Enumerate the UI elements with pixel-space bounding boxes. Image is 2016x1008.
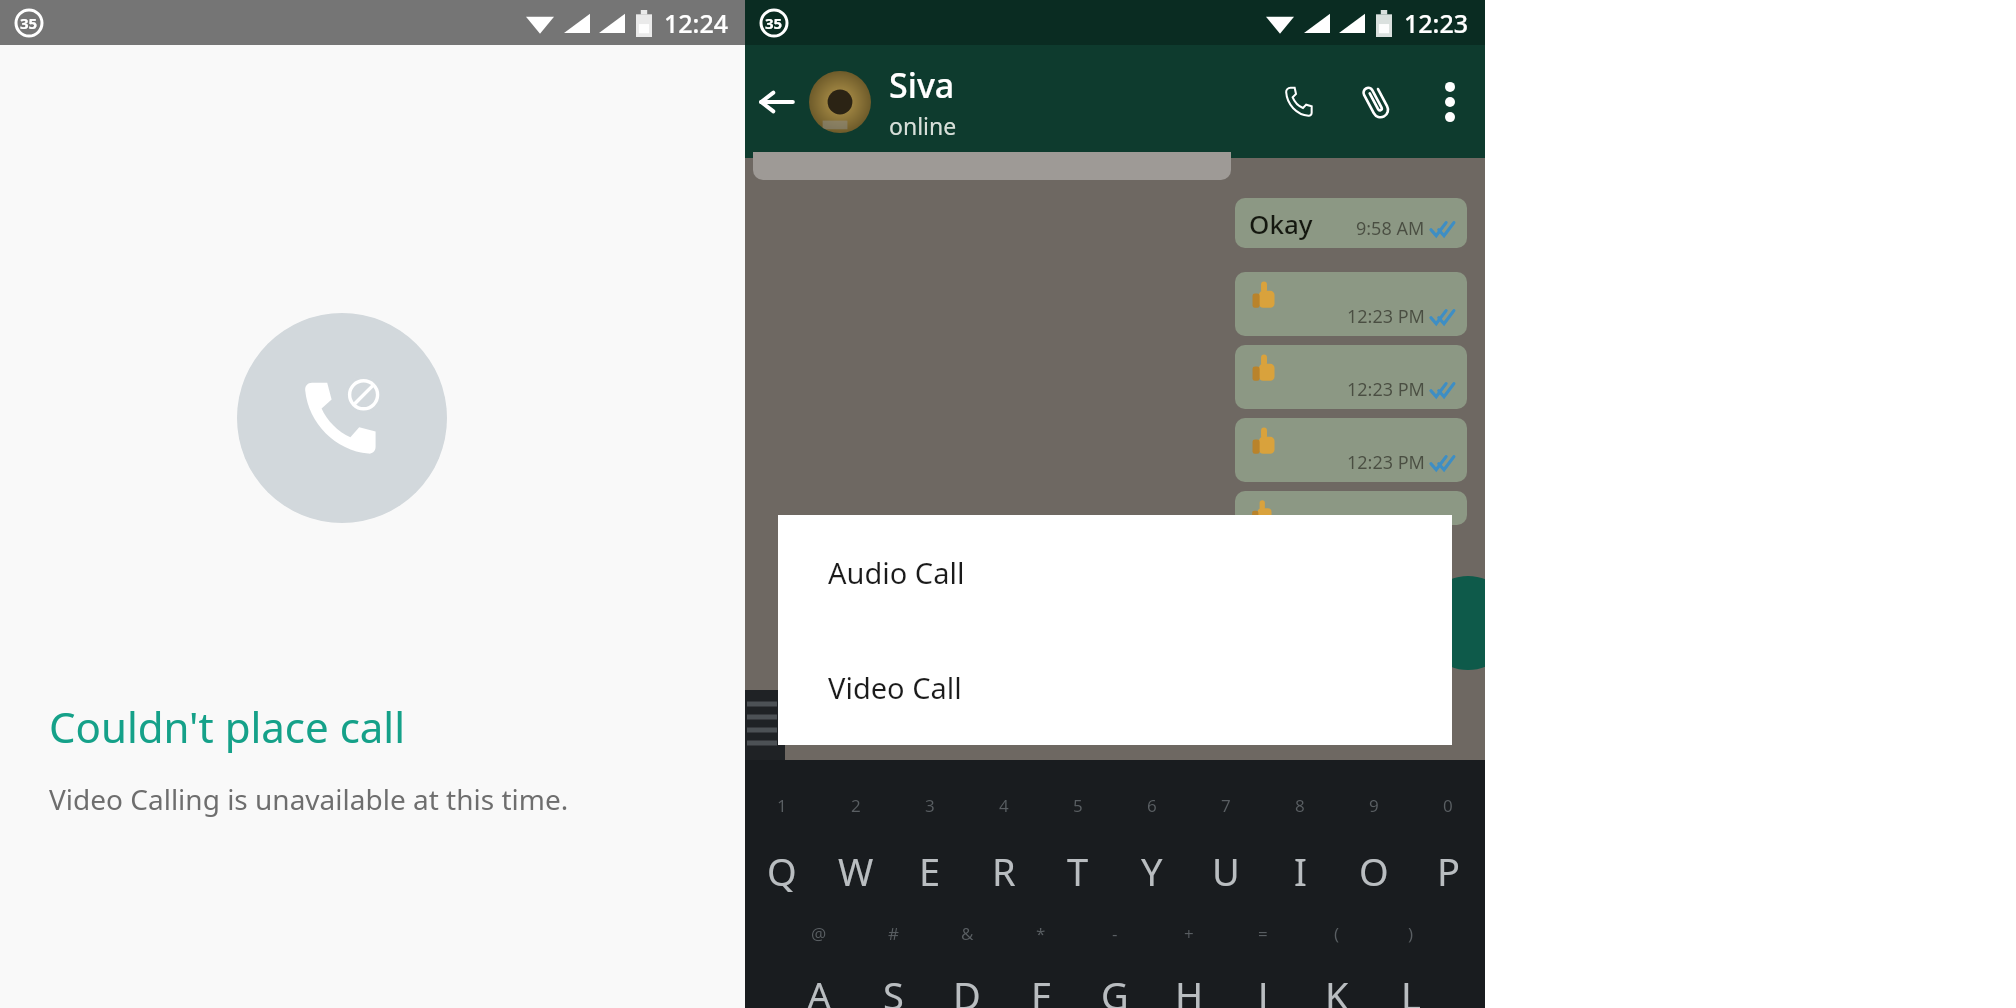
- button[interactable]: Y: [1115, 828, 1189, 914]
- staticText: Y: [1141, 845, 1163, 897]
- staticText: 3: [925, 794, 935, 817]
- staticText: @: [811, 922, 827, 945]
- staticText: 1: [777, 794, 787, 817]
- staticText: 6: [1147, 794, 1157, 817]
- staticText: E: [919, 845, 941, 897]
- button[interactable]: R: [967, 828, 1041, 914]
- staticText: Q: [767, 845, 797, 897]
- staticText: 7: [1221, 794, 1231, 817]
- button[interactable]: Attach: [1337, 63, 1415, 141]
- staticText: online: [889, 110, 957, 141]
- staticText: 12:23: [1404, 6, 1469, 40]
- button[interactable]: A: [782, 952, 856, 1008]
- staticText: &: [961, 922, 974, 945]
- staticText: ): [1408, 922, 1414, 945]
- staticText: Okay: [1249, 206, 1313, 241]
- staticText: W: [838, 845, 874, 897]
- staticText: 12:24: [664, 6, 729, 40]
- staticText: T: [1067, 845, 1089, 897]
- button[interactable]: K: [1300, 952, 1374, 1008]
- button[interactable]: E: [893, 828, 967, 914]
- staticText: +: [1184, 922, 1194, 945]
- button[interactable]: J: [1226, 952, 1300, 1008]
- staticText: I: [1294, 845, 1307, 897]
- staticText: 35: [765, 13, 783, 33]
- staticText: U: [1212, 845, 1240, 897]
- staticText: 35: [20, 13, 38, 33]
- button[interactable]: 12:23 PM: [1235, 345, 1467, 409]
- button[interactable]: F: [1004, 952, 1078, 1008]
- button[interactable]: Send: [1421, 576, 1515, 670]
- button[interactable]: Contact photo: [809, 71, 871, 133]
- button[interactable]: Audio Call: [778, 515, 1452, 630]
- staticText: 12:23 PM: [1347, 304, 1425, 329]
- button[interactable]: 12:23 PM: [1235, 272, 1467, 336]
- staticText: 5: [1073, 794, 1083, 817]
- staticText: #: [888, 922, 899, 945]
- staticText: K: [1325, 969, 1349, 1008]
- button[interactable]: D: [930, 952, 1004, 1008]
- staticText: 12:23 PM: [1347, 450, 1425, 475]
- staticText: P: [1437, 845, 1460, 897]
- staticText: 8: [1295, 794, 1305, 817]
- button[interactable]: Back: [745, 70, 809, 134]
- staticText: R: [992, 845, 1016, 897]
- button[interactable]: I: [1263, 828, 1337, 914]
- staticText: S: [883, 969, 904, 1008]
- staticText: 9:58 AM: [1356, 216, 1425, 241]
- button[interactable]: Siva: [889, 62, 1259, 141]
- staticText: =: [1258, 922, 1268, 945]
- staticText: Video Calling is unavailable at this tim…: [49, 780, 569, 818]
- button[interactable]: U: [1189, 828, 1263, 914]
- button[interactable]: G: [1078, 952, 1152, 1008]
- staticText: L: [1401, 969, 1421, 1008]
- staticText: D: [953, 969, 981, 1008]
- button[interactable]: Q: [745, 828, 819, 914]
- staticText: A: [807, 969, 832, 1008]
- staticText: 0: [1443, 794, 1453, 817]
- staticText: G: [1101, 969, 1129, 1008]
- staticText: 2: [851, 794, 861, 817]
- button[interactable]: Okay: [1235, 198, 1467, 248]
- staticText: 12:23 PM: [1347, 377, 1425, 402]
- button[interactable]: More options: [1415, 67, 1485, 137]
- staticText: Audio Call: [828, 553, 965, 592]
- button[interactable]: Call: [1259, 63, 1337, 141]
- staticText: -: [1112, 922, 1118, 945]
- button[interactable]: 12:23 PM: [1235, 418, 1467, 482]
- staticText: Video Call: [828, 668, 962, 707]
- button[interactable]: W: [819, 828, 893, 914]
- button[interactable]: L: [1374, 952, 1448, 1008]
- staticText: (: [1334, 922, 1340, 945]
- button[interactable]: T: [1041, 828, 1115, 914]
- button[interactable]: S: [856, 952, 930, 1008]
- staticText: Couldn't place call: [49, 698, 406, 755]
- staticText: Siva: [889, 62, 955, 108]
- button[interactable]: Video Call: [778, 630, 1452, 745]
- staticText: H: [1175, 969, 1204, 1008]
- staticText: F: [1031, 969, 1051, 1008]
- button[interactable]: O: [1337, 828, 1411, 914]
- staticText: O: [1359, 845, 1389, 897]
- staticText: 9: [1369, 794, 1379, 817]
- button[interactable]: P: [1411, 828, 1485, 914]
- staticText: 4: [999, 794, 1009, 817]
- staticText: *: [1036, 922, 1046, 945]
- staticText: J: [1258, 969, 1269, 1008]
- button[interactable]: H: [1152, 952, 1226, 1008]
